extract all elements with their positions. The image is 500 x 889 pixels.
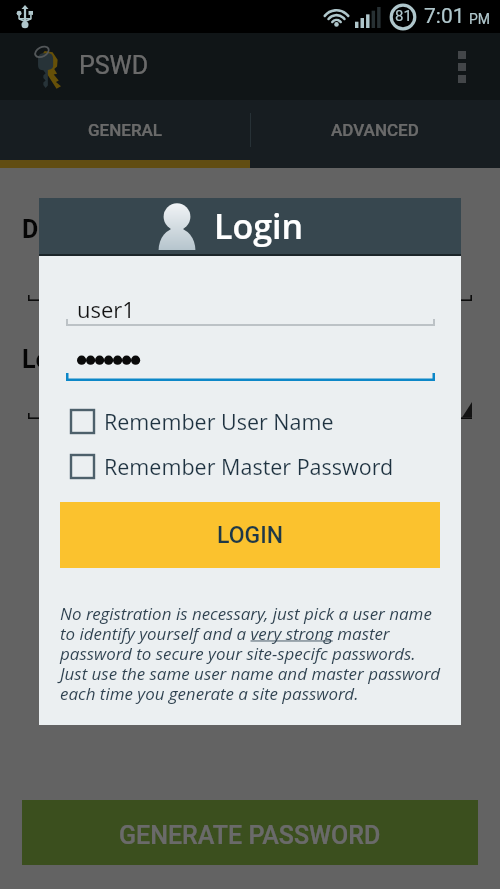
- staticText: Remember Master Password: [104, 452, 394, 481]
- staticText: Remember User Name: [104, 407, 334, 436]
- staticText: GENERATE PASSWORD: [119, 821, 381, 850]
- staticText: Description: [22, 215, 151, 244]
- button[interactable]: More options: [458, 51, 466, 83]
- button[interactable]: GENERAL: [0, 100, 250, 160]
- button[interactable]: ADVANCED: [250, 100, 500, 160]
- staticText: 81: [395, 7, 412, 25]
- staticText: Login: [214, 203, 304, 249]
- staticText: No registration is necessary, just pick …: [60, 602, 443, 705]
- button[interactable]: Remember User Name: [60, 406, 440, 436]
- button[interactable]: Remember Master Password: [60, 451, 440, 481]
- staticText: PSWD: [79, 51, 149, 80]
- staticText: ADVANCED: [331, 120, 419, 140]
- button[interactable]: LOGIN: [60, 502, 440, 568]
- staticText: 7:01: [424, 4, 465, 29]
- staticText: GENERAL: [88, 120, 163, 140]
- staticText: PM: [469, 11, 491, 27]
- staticText: LOGIN: [217, 522, 284, 549]
- staticText: user1: [77, 294, 135, 324]
- staticText: Length: [22, 345, 100, 374]
- button[interactable]: GENERATE PASSWORD: [22, 800, 478, 865]
